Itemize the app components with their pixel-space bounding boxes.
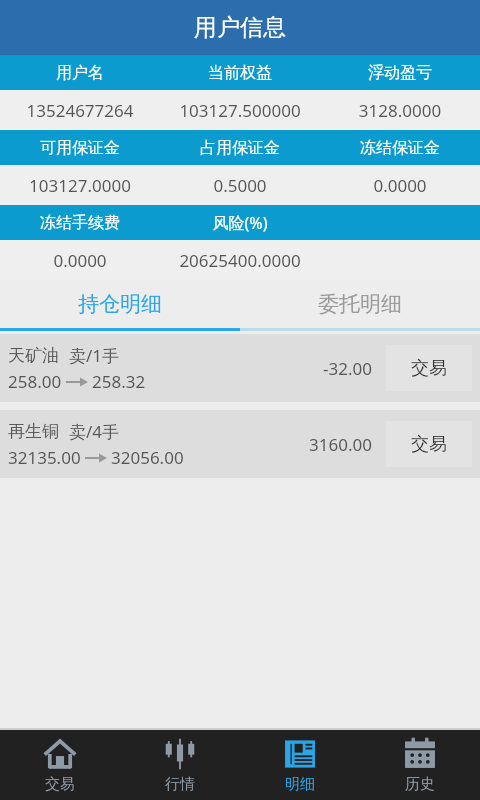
staticText: 卖/1手 xyxy=(69,344,120,367)
button[interactable]: 交易 xyxy=(0,730,120,800)
staticText: 0.5000 xyxy=(160,174,320,197)
staticText: 卖/4手 xyxy=(69,420,120,443)
staticText: 交易 xyxy=(411,433,447,456)
button[interactable]: 持仓明细 xyxy=(0,280,240,328)
staticText: 258.00 xyxy=(8,370,62,393)
staticText: 用户信息 xyxy=(194,13,286,42)
staticText: 3128.0000 xyxy=(320,99,480,122)
staticText: 冻结保证金 xyxy=(320,138,480,158)
button[interactable]: 交易 xyxy=(386,421,472,467)
staticText: 委托明细 xyxy=(318,291,402,317)
staticText: 3160.00 xyxy=(282,433,372,456)
staticText: 浮动盈亏 xyxy=(320,63,480,83)
staticText: 再生铜 xyxy=(8,421,59,442)
staticText: 13524677264 xyxy=(0,99,160,122)
staticText: 32056.00 xyxy=(111,446,184,469)
button[interactable]: 明细 xyxy=(240,730,360,800)
staticText: 交易 xyxy=(411,357,447,380)
staticText: 行情 xyxy=(165,775,195,794)
staticText: -32.00 xyxy=(282,357,372,380)
staticText: 32135.00 xyxy=(8,446,81,469)
staticText: 占用保证金 xyxy=(160,138,320,158)
button[interactable]: 再生铜 xyxy=(0,410,480,478)
staticText: 历史 xyxy=(405,775,435,794)
staticText: 103127.0000 xyxy=(0,174,160,197)
staticText: 103127.500000 xyxy=(160,99,320,122)
staticText: 明细 xyxy=(285,775,315,794)
staticText: 20625400.0000 xyxy=(160,249,320,272)
staticText: 天矿油 xyxy=(8,345,59,366)
button[interactable]: 历史 xyxy=(360,730,480,800)
staticText: 可用保证金 xyxy=(0,138,160,158)
staticText: 持仓明细 xyxy=(78,291,162,317)
staticText: 0.0000 xyxy=(320,174,480,197)
staticText: 冻结手续费 xyxy=(0,213,160,233)
staticText: 风险(%) xyxy=(160,212,320,234)
button[interactable]: 天矿油 xyxy=(0,334,480,402)
staticText: 交易 xyxy=(45,775,75,794)
button[interactable]: 委托明细 xyxy=(240,280,480,328)
staticText: 0.0000 xyxy=(0,249,160,272)
button[interactable]: 交易 xyxy=(386,345,472,391)
staticText: 258.32 xyxy=(92,370,146,393)
staticText: 用户名 xyxy=(0,63,160,83)
staticText: 当前权益 xyxy=(160,63,320,83)
button[interactable]: 行情 xyxy=(120,730,240,800)
